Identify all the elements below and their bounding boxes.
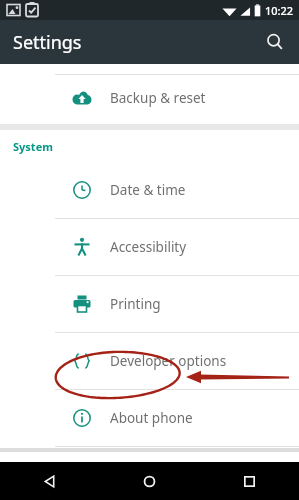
staticText: About phone: [110, 409, 193, 427]
button[interactable]: Backup & reset: [0, 75, 299, 121]
staticText: Settings: [13, 30, 82, 55]
button[interactable]: Printing: [0, 276, 299, 332]
button[interactable]: Accessibility: [0, 219, 299, 275]
staticText: 10:22: [265, 3, 294, 18]
staticText: System: [13, 139, 53, 154]
button[interactable]: Recent apps: [199, 462, 299, 500]
staticText: Printing: [110, 295, 161, 313]
button[interactable]: Home: [99, 462, 199, 500]
button[interactable]: Date & time: [0, 162, 299, 218]
button[interactable]: Search: [257, 24, 293, 60]
button[interactable]: Developer options: [0, 333, 299, 389]
button[interactable]: About phone: [0, 390, 299, 446]
staticText: Backup & reset: [110, 89, 206, 107]
staticText: Date & time: [110, 181, 186, 199]
button[interactable]: Back: [0, 462, 99, 500]
staticText: Accessibility: [110, 238, 187, 256]
staticText: Developer options: [110, 352, 227, 370]
